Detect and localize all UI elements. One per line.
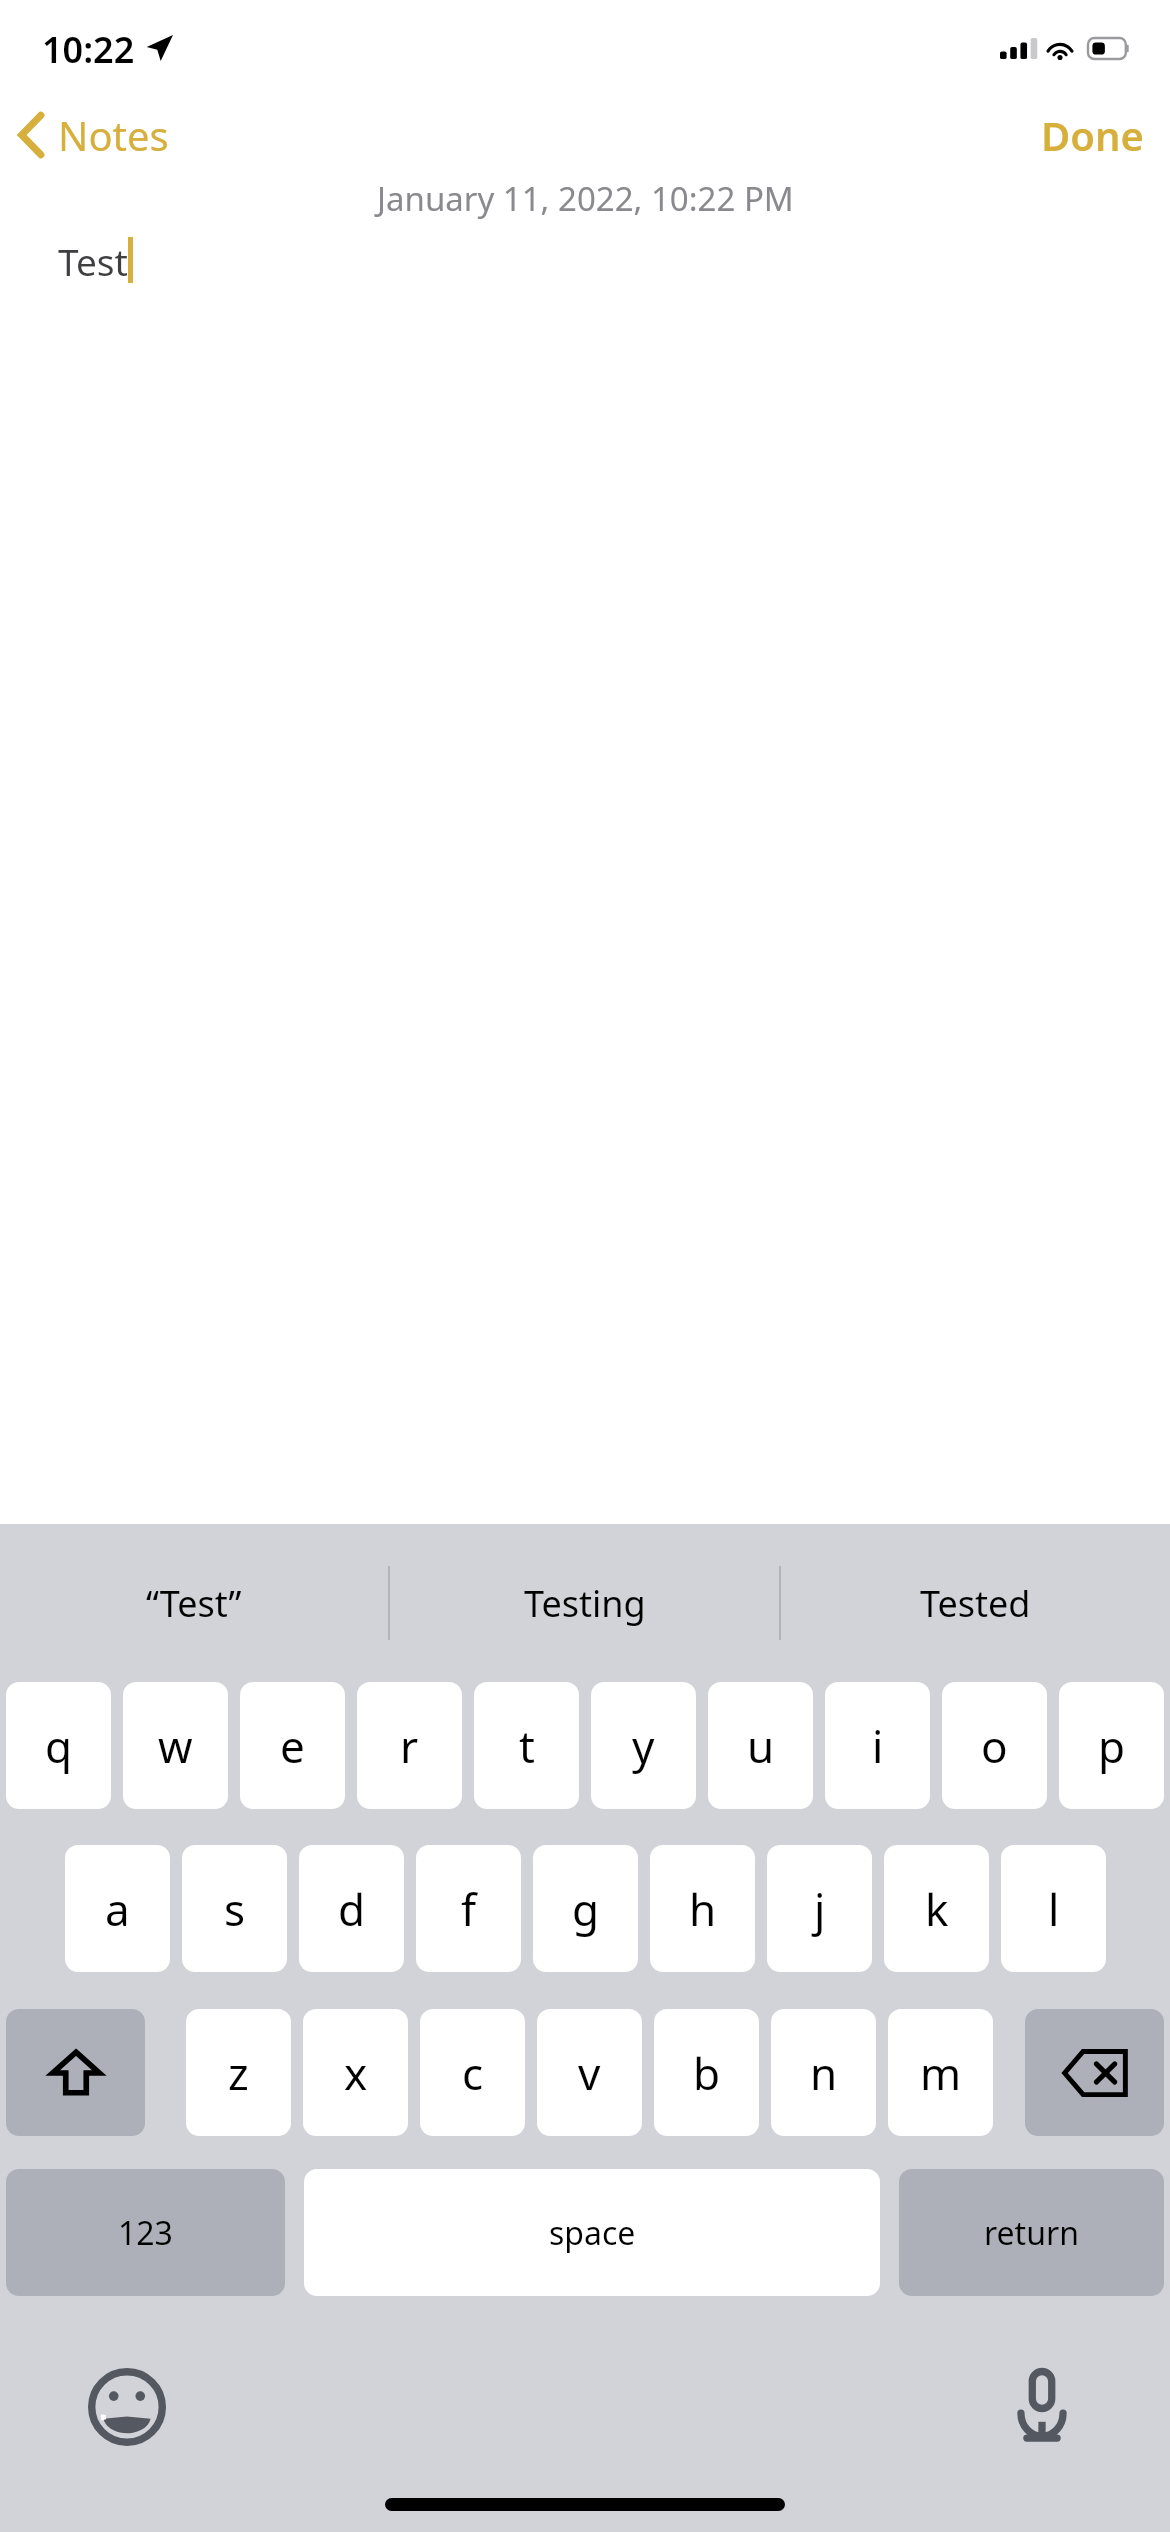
button[interactable]: k (884, 1845, 989, 1972)
button[interactable]: Tested (781, 1524, 1170, 1682)
button[interactable]: p (1059, 1682, 1164, 1809)
staticText: January 11, 2022, 10:22 PM (377, 176, 794, 221)
button[interactable]: Delete (1025, 2009, 1164, 2136)
staticText: x (344, 2043, 368, 2103)
button[interactable]: “Test” (0, 1524, 388, 1682)
staticText: e (280, 1716, 305, 1776)
staticText: o (981, 1716, 1008, 1776)
staticText: 123 (118, 2211, 173, 2255)
staticText: space (549, 2211, 636, 2255)
staticText: w (158, 1716, 193, 1776)
button[interactable]: g (533, 1845, 638, 1972)
staticText: “Test” (146, 1579, 242, 1628)
staticText: z (228, 2043, 249, 2103)
button[interactable]: Emoji keyboard (78, 2358, 176, 2456)
staticText: Test (58, 236, 128, 286)
staticText: m (920, 2043, 962, 2103)
button[interactable]: u (708, 1682, 813, 1809)
button[interactable]: e (240, 1682, 345, 1809)
button[interactable]: o (942, 1682, 1047, 1809)
staticText: s (224, 1879, 246, 1939)
staticText: q (45, 1716, 73, 1776)
staticText: u (747, 1716, 775, 1776)
staticText: Tested (920, 1579, 1031, 1628)
staticText: t (519, 1716, 535, 1776)
button[interactable]: w (123, 1682, 228, 1809)
button[interactable]: d (299, 1845, 404, 1972)
button[interactable]: b (654, 2009, 759, 2136)
button[interactable]: a (65, 1845, 170, 1972)
button[interactable]: y (591, 1682, 696, 1809)
staticText: Testing (524, 1579, 646, 1628)
staticText: Notes (58, 108, 169, 162)
button[interactable]: h (650, 1845, 755, 1972)
button[interactable]: l (1001, 1845, 1106, 1972)
staticText: l (1048, 1879, 1060, 1939)
button[interactable]: i (825, 1682, 930, 1809)
staticText: j (814, 1879, 826, 1939)
staticText: d (338, 1879, 366, 1939)
staticText: 10:22 (42, 25, 135, 74)
staticText: i (872, 1716, 884, 1776)
staticText: f (461, 1879, 477, 1939)
button[interactable]: n (771, 2009, 876, 2136)
button[interactable]: m (888, 2009, 993, 2136)
button[interactable]: c (420, 2009, 525, 2136)
staticText: b (693, 2043, 721, 2103)
button[interactable]: return (899, 2169, 1164, 2296)
button[interactable]: Shift (6, 2009, 145, 2136)
button[interactable]: t (474, 1682, 579, 1809)
button[interactable]: Done (1017, 96, 1170, 174)
staticText: n (810, 2043, 838, 2103)
button[interactable]: j (767, 1845, 872, 1972)
button[interactable]: f (416, 1845, 521, 1972)
staticText: return (984, 2211, 1079, 2255)
button[interactable]: Dictation (993, 2358, 1091, 2456)
staticText: k (925, 1879, 949, 1939)
staticText: r (400, 1716, 419, 1776)
button[interactable]: x (303, 2009, 408, 2136)
button[interactable]: Notes (0, 98, 189, 172)
staticText: c (462, 2043, 484, 2103)
button[interactable]: q (6, 1682, 111, 1809)
staticText: g (572, 1879, 600, 1939)
staticText: a (105, 1879, 130, 1939)
button[interactable]: Testing (390, 1524, 779, 1682)
button[interactable]: z (186, 2009, 291, 2136)
staticText: y (632, 1716, 655, 1776)
button[interactable]: r (357, 1682, 462, 1809)
staticText: v (578, 2043, 601, 2103)
staticText: p (1098, 1716, 1126, 1776)
staticText: h (689, 1879, 717, 1939)
button[interactable]: space (304, 2169, 880, 2296)
button[interactable]: 123 (6, 2169, 285, 2296)
button[interactable]: s (182, 1845, 287, 1972)
staticText: Done (1041, 108, 1144, 162)
button[interactable]: v (537, 2009, 642, 2136)
